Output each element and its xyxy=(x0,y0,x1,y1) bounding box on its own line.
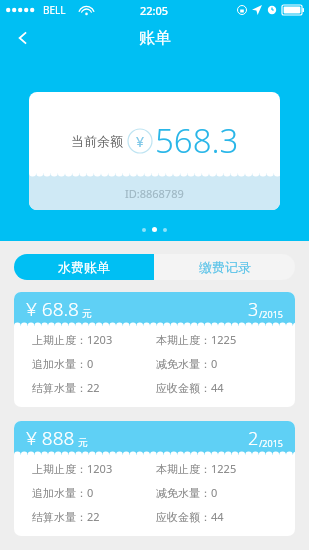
staticText: 结算水量：22 xyxy=(32,380,156,395)
button[interactable]: ¥ 888 xyxy=(14,421,295,536)
staticText: 应收金额：44 xyxy=(156,509,281,524)
staticText: ID:8868789 xyxy=(125,186,184,201)
staticText: 上期止度：1203 xyxy=(32,332,156,347)
staticText: ¥ 68.8 xyxy=(26,296,79,322)
button[interactable]: 当前余额 xyxy=(29,92,280,210)
staticText: 元 xyxy=(82,307,92,320)
button[interactable]: 缴费记录 xyxy=(154,254,295,280)
button[interactable]: Back xyxy=(6,21,40,55)
staticText: BELL xyxy=(43,3,66,17)
staticText: 账单 xyxy=(139,28,171,48)
button[interactable]: ¥ 68.8 xyxy=(14,292,295,407)
staticText: 应收金额：44 xyxy=(156,380,281,395)
staticText: 追加水量：0 xyxy=(32,356,156,371)
button[interactable]: 水费账单 xyxy=(14,254,154,280)
staticText: ¥ 888 xyxy=(26,425,75,451)
staticText: ¥ xyxy=(136,132,145,151)
staticText: 568.3 xyxy=(155,118,239,163)
staticText: 元 xyxy=(78,436,88,449)
staticText: 本期止度：1225 xyxy=(156,461,281,476)
staticText: 22:05 xyxy=(140,3,169,18)
staticText: 减免水量：0 xyxy=(156,485,281,500)
staticText: 当前余额 xyxy=(71,133,123,149)
staticText: 结算水量：22 xyxy=(32,509,156,524)
staticText: 本期止度：1225 xyxy=(156,332,281,347)
staticText: 减免水量：0 xyxy=(156,356,281,371)
staticText: 追加水量：0 xyxy=(32,485,156,500)
staticText: 上期止度：1203 xyxy=(32,461,156,476)
staticText: 2 xyxy=(248,426,259,451)
staticText: /2015 xyxy=(259,437,283,449)
staticText: 3 xyxy=(248,297,259,322)
staticText: 缴费记录 xyxy=(199,259,251,275)
staticText: /2015 xyxy=(259,308,283,320)
staticText: 水费账单 xyxy=(58,259,110,275)
